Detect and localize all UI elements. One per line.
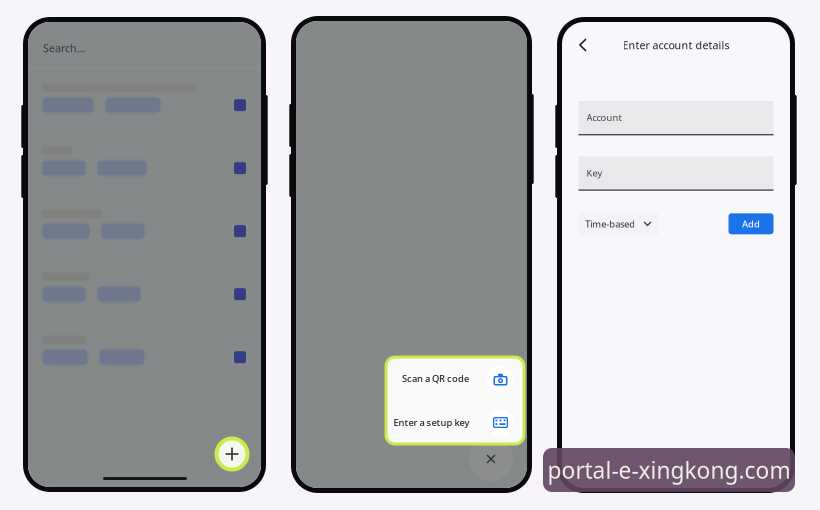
staticText: Time-based	[585, 218, 635, 230]
staticText: Account	[586, 111, 621, 124]
button[interactable]	[43, 84, 246, 112]
button[interactable]: Add account	[213, 435, 251, 473]
button[interactable]: Account	[578, 101, 773, 135]
button[interactable]	[43, 210, 246, 238]
button[interactable]: Add	[728, 213, 773, 234]
button[interactable]: Enter a setup key	[386, 402, 524, 443]
staticText: Key	[586, 167, 602, 179]
button[interactable]: Scan a QR code	[386, 358, 524, 399]
button[interactable]	[43, 273, 246, 301]
staticText: Enter a setup key	[393, 416, 469, 429]
button[interactable]	[43, 147, 246, 175]
button[interactable]	[43, 336, 246, 364]
button[interactable]: Key	[578, 156, 773, 191]
button[interactable]: Close	[468, 436, 514, 482]
staticText: Add	[742, 218, 760, 230]
button[interactable]: Back	[562, 30, 594, 60]
button[interactable]: Time-based	[578, 212, 658, 236]
staticText: Search…	[43, 41, 85, 55]
staticText: Enter account details	[622, 38, 729, 52]
staticText: portal-e-xingkong.com	[547, 455, 790, 485]
staticText: Scan a QR code	[402, 372, 469, 385]
